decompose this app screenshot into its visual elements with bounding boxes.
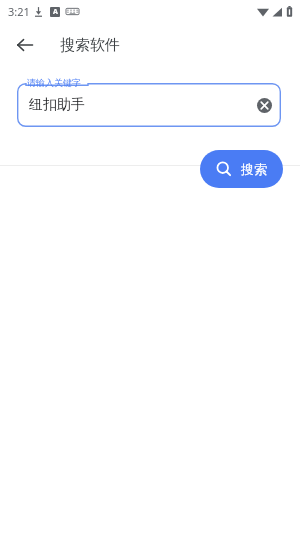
button[interactable]: 搜索 bbox=[200, 150, 283, 188]
staticText: 搜索 bbox=[241, 161, 267, 177]
staticText: A bbox=[53, 7, 58, 17]
button[interactable]: Clear bbox=[252, 93, 276, 117]
button[interactable] bbox=[17, 83, 281, 127]
staticText: 请输入关键字 bbox=[27, 77, 81, 88]
staticText: 3:21 bbox=[8, 4, 30, 19]
button[interactable]: Back bbox=[9, 29, 41, 61]
staticText: 纽扣助手 bbox=[29, 96, 85, 114]
staticText: 搜索软件 bbox=[60, 36, 120, 55]
